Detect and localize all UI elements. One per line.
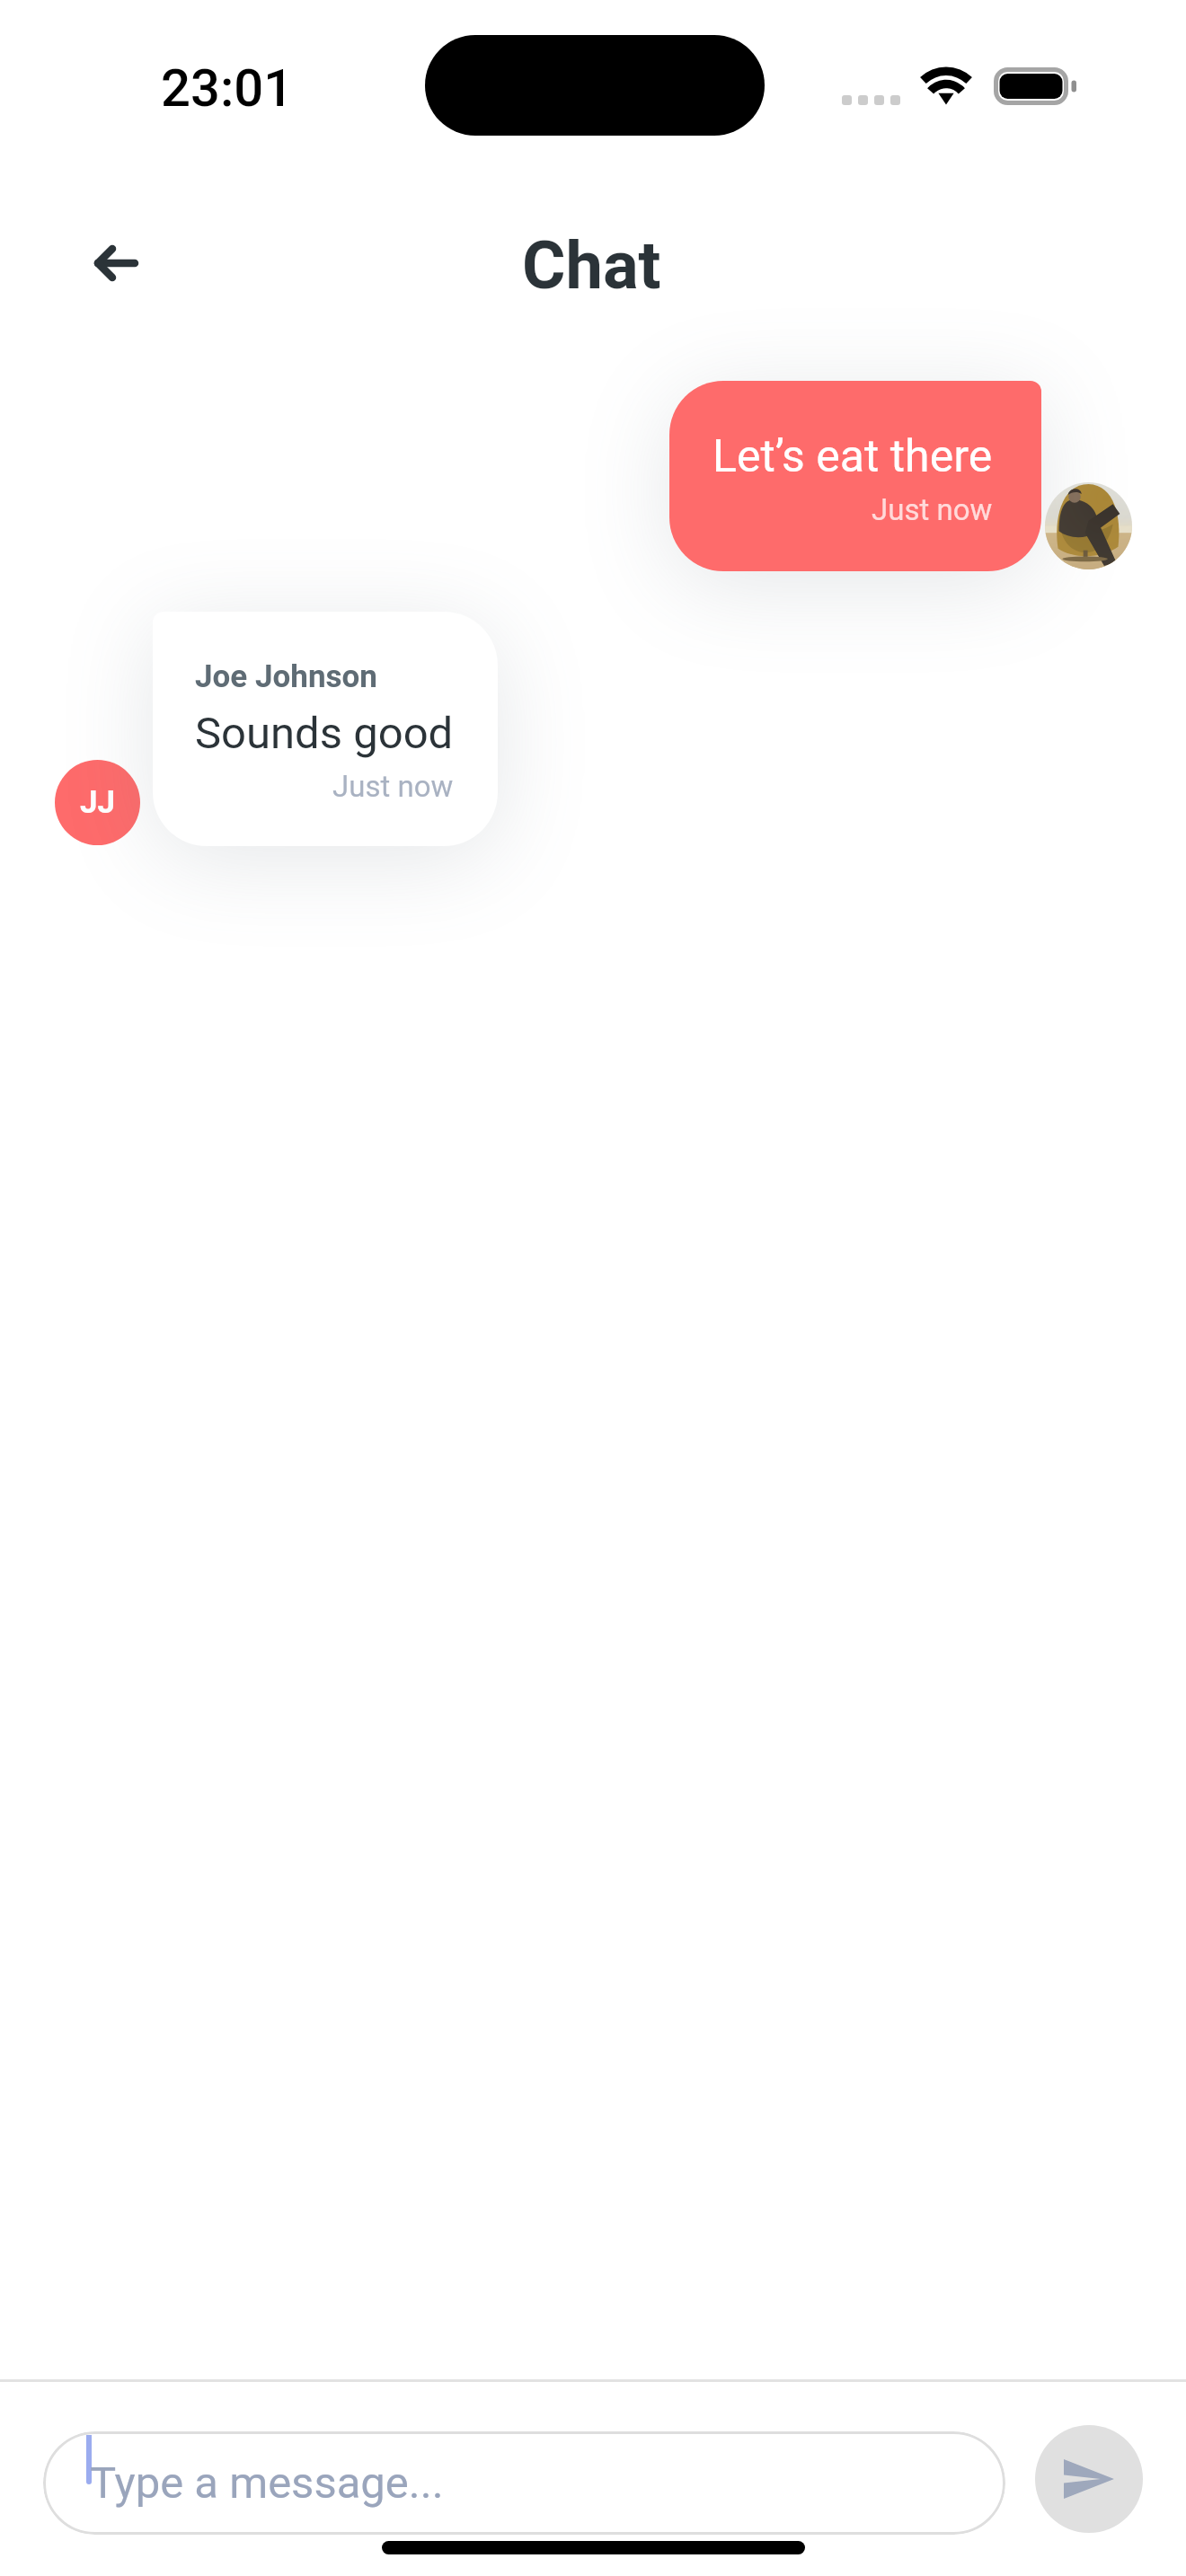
button[interactable]: JJ [55, 760, 140, 845]
staticText: Just now [872, 492, 993, 527]
staticText: Chat [522, 226, 661, 304]
button[interactable]: Back [63, 209, 171, 317]
staticText: Sounds good [195, 708, 454, 759]
button[interactable]: Let’s eat there [669, 381, 1041, 571]
staticText: Just now [332, 769, 454, 804]
staticText: Type a message... [90, 2457, 444, 2509]
button[interactable] [43, 2431, 1005, 2535]
staticText: 23:01 [161, 57, 294, 119]
button[interactable]: Joe Johnson [153, 612, 498, 846]
staticText: Let’s eat there [712, 430, 993, 483]
button[interactable]: Send [1035, 2425, 1143, 2533]
staticText: Joe Johnson [195, 658, 377, 695]
staticText: JJ [80, 784, 116, 821]
